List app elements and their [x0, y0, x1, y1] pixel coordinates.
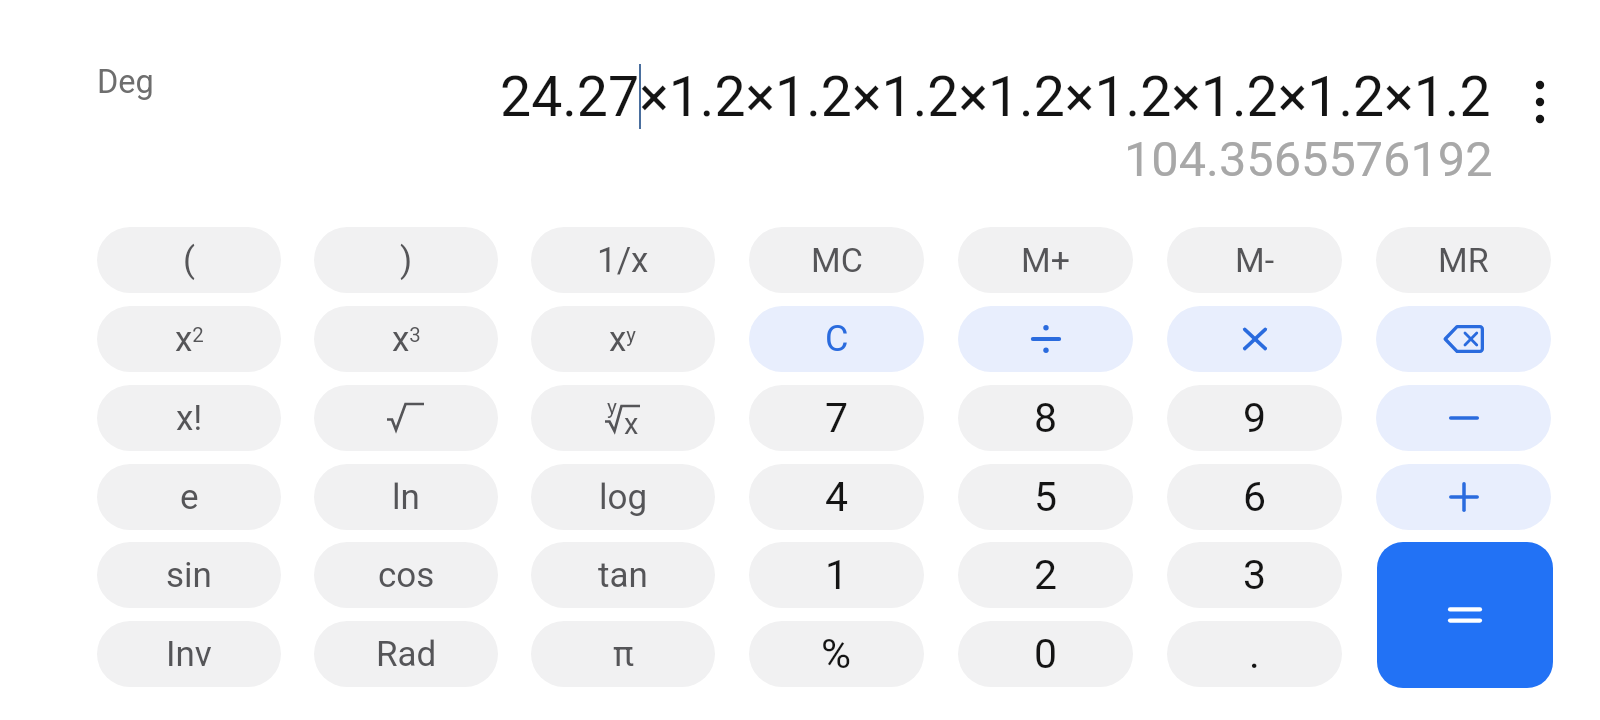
staticText: C [825, 318, 849, 360]
button[interactable]: ln [314, 464, 498, 530]
staticText: x! [176, 398, 203, 439]
staticText: e [180, 477, 199, 518]
button[interactable]: 6 [1167, 464, 1342, 530]
staticText: xy [609, 319, 637, 360]
button[interactable]: cos [314, 542, 498, 608]
button[interactable]: 5 [958, 464, 1133, 530]
button[interactable]: sin [97, 542, 281, 608]
staticText: 3 [1243, 551, 1267, 599]
staticText: cos [378, 555, 435, 596]
button[interactable]: Nth root [531, 385, 715, 451]
staticText: 1 [825, 551, 849, 599]
staticText: 104.3565576192 [1124, 131, 1493, 187]
staticText: MC [811, 240, 863, 280]
button[interactable]: 4 [749, 464, 924, 530]
button[interactable]: M- [1167, 227, 1342, 293]
button[interactable]: 1 [749, 542, 924, 608]
staticText: ( [183, 240, 195, 281]
button[interactable]: Multiply [1167, 306, 1342, 372]
button[interactable]: C [749, 306, 924, 372]
button[interactable]: Inv [97, 621, 281, 687]
button[interactable]: . [1167, 621, 1342, 687]
staticText: 5 [1034, 473, 1058, 521]
button[interactable]: MR [1376, 227, 1551, 293]
staticText: 1/x [597, 240, 649, 281]
staticText: M+ [1021, 240, 1070, 280]
button[interactable]: % [749, 621, 924, 687]
staticText: sin [166, 555, 212, 596]
button[interactable]: 9 [1167, 385, 1342, 451]
button[interactable]: 8 [958, 385, 1133, 451]
button[interactable]: π [531, 621, 715, 687]
staticText: 6 [1243, 473, 1267, 521]
button[interactable]: Backspace [1376, 306, 1551, 372]
button[interactable]: Equals [1377, 542, 1553, 688]
button[interactable]: Plus [1376, 464, 1551, 530]
staticText: x [624, 407, 639, 441]
button[interactable]: x! [97, 385, 281, 451]
button[interactable]: 0 [958, 621, 1133, 687]
button[interactable]: log [531, 464, 715, 530]
staticText: 0 [1034, 630, 1058, 678]
staticText: 4 [825, 473, 849, 521]
staticText: M- [1235, 240, 1275, 280]
staticText: 9 [1243, 394, 1267, 442]
button[interactable]: More options [1506, 68, 1574, 136]
staticText: π [613, 634, 634, 675]
staticText: 8 [1034, 394, 1058, 442]
button[interactable]: Minus [1376, 385, 1551, 451]
button[interactable]: x3 [314, 306, 498, 372]
staticText: 24.27×1.2×1.2×1.2×1.2×1.2×1.2×1.2×1.2 [500, 65, 1491, 130]
button[interactable]: MC [749, 227, 924, 293]
button[interactable]: x2 [97, 306, 281, 372]
button[interactable]: 3 [1167, 542, 1342, 608]
staticText: log [599, 477, 648, 518]
staticText: y [607, 395, 617, 420]
button[interactable]: Square root [314, 385, 498, 451]
staticText: Inv [166, 634, 212, 675]
button[interactable]: 1/x [531, 227, 715, 293]
staticText: x3 [392, 319, 421, 360]
button[interactable]: Deg [89, 59, 189, 105]
staticText: x2 [175, 319, 204, 360]
staticText: ) [400, 240, 413, 281]
button[interactable]: e [97, 464, 281, 530]
staticText: ln [392, 477, 420, 518]
button[interactable]: M+ [958, 227, 1133, 293]
staticText: Rad [376, 634, 437, 675]
staticText: tan [598, 555, 648, 596]
button[interactable]: 7 [749, 385, 924, 451]
button[interactable]: xy [531, 306, 715, 372]
button[interactable]: Rad [314, 621, 498, 687]
staticText: 2 [1034, 551, 1058, 599]
staticText: MR [1438, 240, 1489, 280]
button[interactable]: Divide [958, 306, 1133, 372]
staticText: Deg [97, 63, 154, 101]
button[interactable]: 2 [958, 542, 1133, 608]
staticText: 7 [825, 394, 849, 442]
button[interactable]: tan [531, 542, 715, 608]
staticText: % [821, 630, 852, 678]
button[interactable]: ( [97, 227, 281, 293]
staticText: . [1249, 630, 1260, 678]
button[interactable]: ) [314, 227, 498, 293]
